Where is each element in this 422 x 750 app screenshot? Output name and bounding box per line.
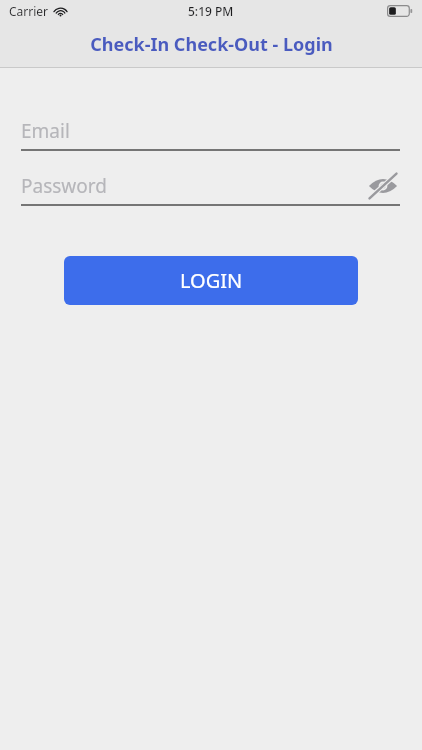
button[interactable]: Password bbox=[21, 168, 400, 206]
staticText: Password bbox=[21, 173, 107, 199]
button[interactable]: LOGIN bbox=[64, 256, 358, 305]
staticText: Carrier bbox=[9, 3, 49, 19]
staticText: 5:19 PM bbox=[188, 3, 234, 19]
staticText: Email bbox=[21, 118, 70, 144]
staticText: Check-In Check-Out - Login bbox=[90, 32, 333, 57]
button[interactable]: Show password bbox=[366, 169, 400, 203]
staticText: LOGIN bbox=[180, 267, 243, 294]
button[interactable]: Email bbox=[21, 113, 400, 151]
